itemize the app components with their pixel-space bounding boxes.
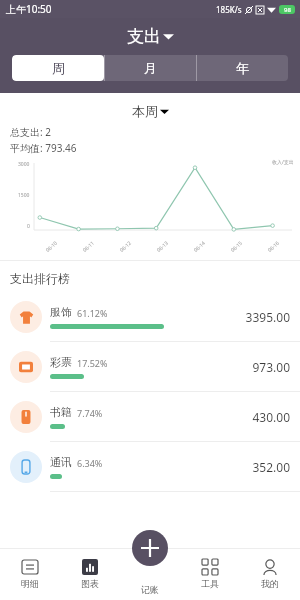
staticText: 06-15 <box>229 239 245 254</box>
staticText: 明细 <box>21 578 39 589</box>
staticText: 06-13 <box>155 239 171 254</box>
button[interactable]: 本周 <box>0 103 300 119</box>
staticText: 支出 <box>127 26 161 47</box>
staticText: 上午10:50 <box>6 2 52 16</box>
staticText: 0 <box>27 223 30 230</box>
staticText: 彩票 <box>50 355 72 369</box>
button[interactable]: 周 <box>12 55 104 81</box>
staticText: 支出排行榜 <box>10 271 70 286</box>
staticText: 1500 <box>18 192 30 199</box>
staticText: 06-12 <box>118 239 134 254</box>
button[interactable]: 服饰 <box>0 292 300 342</box>
staticText: 收入/支出 <box>272 159 294 166</box>
button[interactable]: 支出 <box>127 26 174 47</box>
staticText: 周 <box>52 60 65 76</box>
staticText: 17.52% <box>77 357 108 369</box>
staticText: 图表 <box>81 578 99 589</box>
button[interactable]: 记账 <box>120 548 180 600</box>
staticText: 430.00 <box>252 409 290 425</box>
staticText: 服饰 <box>50 305 72 319</box>
staticText: 352.00 <box>252 459 290 475</box>
staticText: 通讯 <box>50 455 72 469</box>
staticText: 61.12% <box>77 307 108 319</box>
staticText: 7.74% <box>77 407 103 419</box>
button[interactable]: 工具 <box>180 548 240 600</box>
staticText: 书籍 <box>50 405 72 419</box>
staticText: 平均值: 793.46 <box>10 141 77 155</box>
button[interactable]: 记账 <box>132 530 168 566</box>
button[interactable]: 我的 <box>240 548 300 600</box>
staticText: 3395.00 <box>245 309 290 325</box>
staticText: 06-16 <box>266 239 282 254</box>
staticText: 973.00 <box>252 359 290 375</box>
button[interactable]: 书籍 <box>0 392 300 442</box>
button[interactable]: 彩票 <box>0 342 300 392</box>
staticText: 98 <box>284 6 291 14</box>
staticText: 06-14 <box>192 239 208 254</box>
staticText: 3000 <box>18 161 30 168</box>
button[interactable]: 图表 <box>60 548 120 600</box>
staticText: 185K/s <box>216 4 242 15</box>
button[interactable]: 年 <box>197 55 288 81</box>
button[interactable]: 通讯 <box>0 442 300 492</box>
staticText: 6.34% <box>77 457 103 469</box>
staticText: 06-11 <box>81 239 97 254</box>
staticText: 工具 <box>201 578 219 589</box>
button[interactable]: 月 <box>105 55 196 81</box>
staticText: 年 <box>236 60 249 76</box>
button[interactable]: 明细 <box>0 548 60 600</box>
staticText: 记账 <box>141 584 159 595</box>
staticText: 我的 <box>261 578 279 589</box>
staticText: 总支出: 2 <box>10 125 51 139</box>
staticText: 本周 <box>132 103 158 119</box>
staticText: 月 <box>144 60 157 76</box>
staticText: 06-10 <box>44 239 60 254</box>
